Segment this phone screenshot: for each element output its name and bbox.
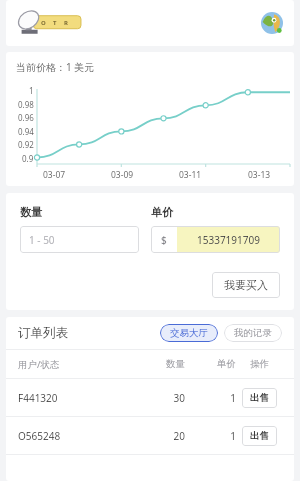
button[interactable]: 我要买入 [212, 272, 280, 298]
staticText: 我的记录 [234, 327, 272, 339]
staticText: $ [161, 233, 167, 247]
staticText: R [64, 19, 68, 27]
button[interactable]: F441320 [6, 379, 294, 416]
staticText: F441320 [18, 391, 127, 405]
staticText: 0.9 [22, 153, 34, 164]
staticText: 0.98 [18, 99, 34, 110]
button[interactable]: 交易大厅 [160, 324, 218, 342]
staticText: O [41, 19, 46, 27]
staticText: 操作 [250, 358, 269, 370]
staticText: 0.92 [18, 139, 34, 150]
staticText: 数量 [127, 358, 185, 370]
staticText: 我要买入 [224, 278, 268, 292]
staticText: 03-09 [111, 169, 134, 181]
staticText: 单价 [185, 358, 236, 370]
staticText: 30 [127, 391, 185, 405]
button[interactable]: O565248 [6, 417, 294, 454]
staticText: 交易大厅 [170, 327, 208, 339]
staticText: 1 - 50 [29, 233, 55, 247]
staticText: 03-13 [248, 169, 271, 181]
staticText: 用户/状态 [18, 358, 127, 371]
button[interactable]: Language [259, 10, 285, 36]
staticText: 1 [185, 391, 236, 405]
staticText: 03-11 [179, 169, 202, 181]
staticText: 单价 [151, 205, 173, 219]
staticText: 0.94 [18, 126, 34, 137]
staticText: 数量 [20, 205, 42, 219]
staticText: 15337191709 [197, 233, 260, 247]
staticText: 20 [127, 429, 185, 443]
button[interactable]: $ [151, 226, 280, 253]
staticText: 0.96 [18, 112, 34, 123]
staticText: 1 [185, 429, 236, 443]
button[interactable]: 出售 [242, 388, 277, 408]
staticText: 03-07 [43, 169, 66, 181]
staticText: 当前价格：1 美元 [16, 60, 95, 74]
staticText: O565248 [18, 429, 127, 443]
staticText: T [53, 19, 57, 27]
button[interactable]: 出售 [242, 426, 277, 446]
staticText: 1 [29, 85, 34, 96]
staticText: 出售 [250, 392, 269, 404]
staticText: 订单列表 [18, 325, 68, 341]
button[interactable]: 1 - 50 [20, 226, 139, 253]
button[interactable]: 我的记录 [224, 324, 282, 342]
button[interactable]: OTR logo [15, 10, 83, 36]
staticText: 出售 [250, 430, 269, 442]
